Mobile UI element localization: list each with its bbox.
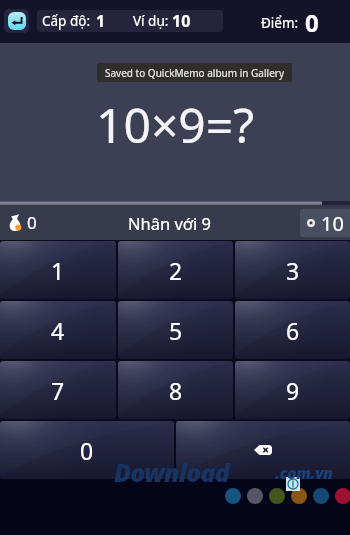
staticText: Nhân với 9 xyxy=(128,212,212,234)
staticText: 3 xyxy=(286,255,300,286)
staticText: 10 xyxy=(172,10,191,32)
staticText: .com.vn xyxy=(275,462,333,484)
staticText: Cấp độ: xyxy=(42,12,91,30)
button[interactable]: 6 xyxy=(235,301,350,359)
staticText: 0 xyxy=(80,435,94,466)
button[interactable]: Back xyxy=(4,9,29,33)
staticText: 2 xyxy=(169,255,183,286)
staticText: 0 xyxy=(27,211,37,234)
staticText: 1 xyxy=(51,255,65,286)
staticText: Saved to QuickMemo album in Gallery xyxy=(105,66,284,80)
staticText: 4 xyxy=(51,315,65,346)
staticText: Điểm: xyxy=(261,14,299,32)
staticText: Ví dụ: xyxy=(133,12,169,30)
staticText: Download xyxy=(114,455,230,489)
button[interactable]: 4 xyxy=(0,301,116,359)
staticText: 10×9=? xyxy=(96,92,255,157)
staticText: 1 xyxy=(96,10,106,32)
button[interactable]: 8 xyxy=(118,361,233,419)
button[interactable]: 3 xyxy=(235,241,350,299)
staticText: 5 xyxy=(169,315,183,346)
staticText: 8 xyxy=(169,375,183,406)
staticText: 9 xyxy=(286,375,300,406)
button[interactable]: 9 xyxy=(235,361,350,419)
button[interactable]: 1 xyxy=(0,241,116,299)
staticText: 7 xyxy=(51,375,65,406)
button[interactable]: 0 xyxy=(0,421,174,479)
staticText: 10 xyxy=(321,210,344,237)
button[interactable]: 7 xyxy=(0,361,116,419)
button[interactable]: Backspace xyxy=(176,421,350,479)
button[interactable]: 5 xyxy=(118,301,233,359)
staticText: 6 xyxy=(286,315,300,346)
staticText: 0 xyxy=(305,6,319,39)
button[interactable]: 2 xyxy=(118,241,233,299)
